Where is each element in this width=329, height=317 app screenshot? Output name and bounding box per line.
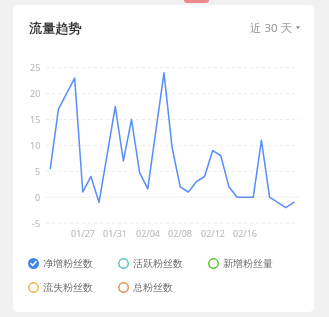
staticText: 流失粉丝数 [43, 281, 93, 294]
staticText: 5 [35, 165, 41, 177]
staticText: 25 [30, 61, 41, 73]
staticText: 01/27 [71, 227, 95, 239]
staticText: -5 [32, 217, 41, 229]
button[interactable]: 近 30 天 [250, 20, 300, 36]
staticText: 活跃粉丝数 [133, 257, 183, 270]
staticText: 10 [30, 139, 41, 151]
button[interactable]: 流失粉丝数 [28, 281, 118, 294]
button[interactable]: 流量趋势 [29, 20, 81, 36]
button[interactable]: 活跃粉丝数 [118, 257, 208, 270]
staticText: 0 [35, 191, 41, 203]
button[interactable]: 新增粉丝量 [208, 257, 298, 270]
staticText: 02/04 [136, 227, 160, 239]
staticText: 近 30 天 [250, 20, 293, 36]
staticText: 02/08 [168, 227, 192, 239]
staticText: 20 [30, 87, 41, 99]
staticText: 总粉丝数 [133, 281, 173, 294]
staticText: 15 [30, 113, 41, 125]
staticText: 净增粉丝数 [43, 257, 93, 270]
staticText: 02/16 [233, 227, 257, 239]
button[interactable]: 净增粉丝数 [28, 257, 118, 270]
staticText: 流量趋势 [29, 20, 81, 36]
staticText: 02/12 [201, 227, 225, 239]
staticText: 01/31 [103, 227, 127, 239]
button[interactable]: 总粉丝数 [118, 281, 208, 294]
staticText: 新增粉丝量 [223, 257, 273, 270]
